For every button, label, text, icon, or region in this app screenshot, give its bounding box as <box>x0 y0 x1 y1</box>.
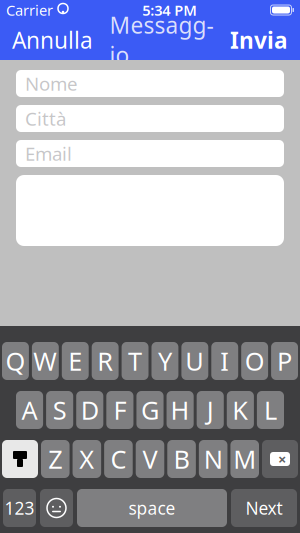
button[interactable]: Z <box>41 440 70 478</box>
staticText: T <box>128 344 142 378</box>
staticText: Z <box>48 442 62 476</box>
staticText: O <box>245 344 265 378</box>
staticText: Carrier <box>6 0 53 20</box>
button[interactable]: B <box>167 440 196 478</box>
staticText: H <box>171 393 190 427</box>
button[interactable]: G <box>136 391 163 429</box>
button[interactable]: L <box>257 391 284 429</box>
button[interactable]: X <box>73 440 101 478</box>
staticText: I <box>220 344 229 378</box>
staticText: Q <box>5 344 25 378</box>
staticText: C <box>110 442 126 476</box>
button[interactable]: U <box>181 342 208 380</box>
staticText: Città <box>25 106 66 131</box>
button[interactable]: E <box>62 342 89 380</box>
button[interactable]: O <box>241 342 268 380</box>
staticText: E <box>68 344 82 378</box>
button[interactable]: K <box>227 391 254 429</box>
staticText: Invia <box>230 25 288 55</box>
staticText: A <box>22 393 38 427</box>
staticText: V <box>142 442 157 476</box>
staticText: N <box>204 442 223 476</box>
staticText: P <box>277 344 292 378</box>
button[interactable]: I <box>211 342 238 380</box>
button[interactable]: H <box>167 391 194 429</box>
staticText: J <box>207 393 214 427</box>
button[interactable]: Next <box>231 489 297 527</box>
button[interactable]: 123 <box>3 489 36 527</box>
staticText: Messaggio <box>109 10 213 70</box>
button[interactable]: Shift <box>2 440 38 478</box>
staticText: K <box>232 393 248 427</box>
button[interactable]: Annulla <box>6 17 99 63</box>
button[interactable]: J <box>197 391 224 429</box>
button[interactable]: W <box>32 342 59 380</box>
staticText: G <box>141 393 159 427</box>
staticText: × <box>278 449 286 469</box>
staticText: 5:34 PM <box>142 0 197 20</box>
staticText: L <box>264 393 277 427</box>
button[interactable]: S <box>46 391 73 429</box>
staticText: R <box>97 344 113 378</box>
staticText: 123 <box>4 496 34 519</box>
staticText: Y <box>158 344 172 378</box>
staticText: Next <box>245 496 282 519</box>
button[interactable]: R <box>92 342 119 380</box>
button[interactable]: P <box>271 342 298 380</box>
button[interactable]: Emoji <box>40 489 73 527</box>
button[interactable]: Invia <box>224 17 294 63</box>
button[interactable]: M <box>230 440 259 478</box>
staticText: F <box>113 393 126 427</box>
staticText: M <box>233 442 256 476</box>
button[interactable]: Q <box>2 342 29 380</box>
button[interactable]: space <box>77 489 227 527</box>
button[interactable]: F <box>106 391 133 429</box>
button[interactable]: Y <box>151 342 178 380</box>
button[interactable]: Delete <box>262 440 298 478</box>
staticText: Email <box>25 141 72 166</box>
staticText: space <box>128 496 175 519</box>
button[interactable]: N <box>199 440 227 478</box>
staticText: D <box>81 393 99 427</box>
staticText: Annulla <box>12 25 93 55</box>
staticText: X <box>79 442 94 476</box>
button[interactable]: A <box>16 391 43 429</box>
staticText: S <box>53 393 67 427</box>
button[interactable]: V <box>136 440 164 478</box>
button[interactable]: D <box>76 391 103 429</box>
staticText: B <box>174 442 190 476</box>
staticText: Nome <box>25 71 78 96</box>
staticText: W <box>33 344 57 378</box>
button[interactable]: C <box>104 440 133 478</box>
staticText: U <box>185 344 204 378</box>
button[interactable]: T <box>122 342 148 380</box>
